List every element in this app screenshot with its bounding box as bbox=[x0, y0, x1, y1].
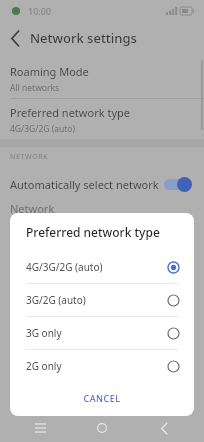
staticText: 2G only bbox=[26, 359, 167, 373]
staticText: Network bbox=[10, 201, 55, 216]
staticText: Automatically select network bbox=[10, 177, 162, 192]
button[interactable]: Automatically select network bbox=[0, 167, 204, 201]
staticText: Preferred network type bbox=[26, 224, 160, 240]
button[interactable]: 3G only bbox=[10, 317, 194, 349]
staticText: 4G/3G/2G (auto) bbox=[10, 123, 76, 135]
staticText: CANCEL bbox=[83, 392, 121, 404]
staticText: Roaming Mode bbox=[10, 64, 89, 79]
staticText: NETWORK bbox=[10, 152, 49, 162]
staticText: All networks bbox=[10, 82, 60, 94]
staticText: 3G/2G (auto) bbox=[26, 293, 167, 307]
button[interactable]: 4G/3G/2G (auto) bbox=[10, 251, 194, 283]
staticText: Network settings bbox=[30, 29, 137, 47]
button[interactable]: CANCEL bbox=[10, 382, 194, 414]
staticText: 3G only bbox=[26, 326, 167, 340]
button[interactable]: 3G/2G (auto) bbox=[10, 284, 194, 316]
staticText: 4G/3G/2G (auto) bbox=[26, 260, 167, 274]
button[interactable]: 2G only bbox=[10, 350, 194, 382]
button[interactable]: Back bbox=[0, 22, 30, 54]
button[interactable]: Home bbox=[80, 414, 124, 442]
staticText: Preferred network type bbox=[10, 105, 130, 120]
button[interactable]: Back bbox=[142, 414, 186, 442]
button[interactable]: Roaming Mode bbox=[0, 58, 204, 98]
staticText: 10:00 bbox=[28, 5, 52, 17]
button[interactable]: Recents bbox=[18, 414, 62, 442]
button[interactable]: Preferred network type bbox=[0, 99, 204, 139]
